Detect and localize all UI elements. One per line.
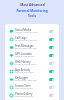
other: Photo Gallery [10, 94, 13, 97]
button[interactable]: App Activity [5, 67, 59, 75]
button[interactable]: Toggle Web History [49, 62, 54, 65]
other: Keylogger [10, 78, 13, 81]
button[interactable]: Toggle Call Logs [49, 38, 54, 41]
button[interactable]: Photo Gallery [5, 91, 59, 99]
staticText: GPS Location Track real time place [15, 52, 49, 58]
button[interactable]: Toggle GPS Location [49, 54, 54, 57]
staticText: Web History Check browsing record [15, 60, 49, 66]
other: Web History [10, 62, 13, 65]
button[interactable]: Social Media [5, 27, 59, 35]
other: GPS Location [10, 54, 13, 57]
button[interactable]: Toggle Social Media [49, 30, 54, 33]
button[interactable]: Text Messages [5, 43, 59, 51]
button[interactable]: Toggle App Activity [49, 70, 54, 73]
button[interactable]: Call Logs [5, 35, 59, 43]
staticText: Most Advanced [20, 3, 45, 7]
other: App Activity [10, 70, 13, 73]
button[interactable]: Toggle Keylogger [49, 78, 54, 81]
staticText: Photo Gallery View saved pictures [15, 92, 49, 98]
button[interactable]: Toggle Text Messages [49, 46, 54, 49]
staticText: Social Media Monitor chats and posts [15, 28, 49, 34]
staticText: Screen Time Daily usage reports [15, 84, 49, 90]
button[interactable]: Web History [5, 59, 59, 67]
other: Text Messages [10, 46, 13, 49]
button[interactable]: Toggle Photo Gallery [49, 94, 54, 97]
button[interactable]: Toggle Screen Time [49, 86, 54, 89]
button[interactable]: Keylogger [5, 75, 59, 83]
other: Screen Time [10, 86, 13, 89]
staticText: Call Logs See every incoming call [15, 36, 49, 42]
other: Social Media [10, 30, 13, 33]
staticText: Parental Monitoring Tools [16, 9, 48, 18]
staticText: Text Messages Read all sent messages [15, 44, 49, 50]
staticText: App Activity Installed app usage [15, 68, 49, 74]
staticText: Keylogger Record every keystroke [15, 76, 49, 82]
other: Call Logs [10, 38, 13, 41]
button[interactable]: GPS Location [5, 51, 59, 59]
button[interactable]: Screen Time [5, 83, 59, 91]
